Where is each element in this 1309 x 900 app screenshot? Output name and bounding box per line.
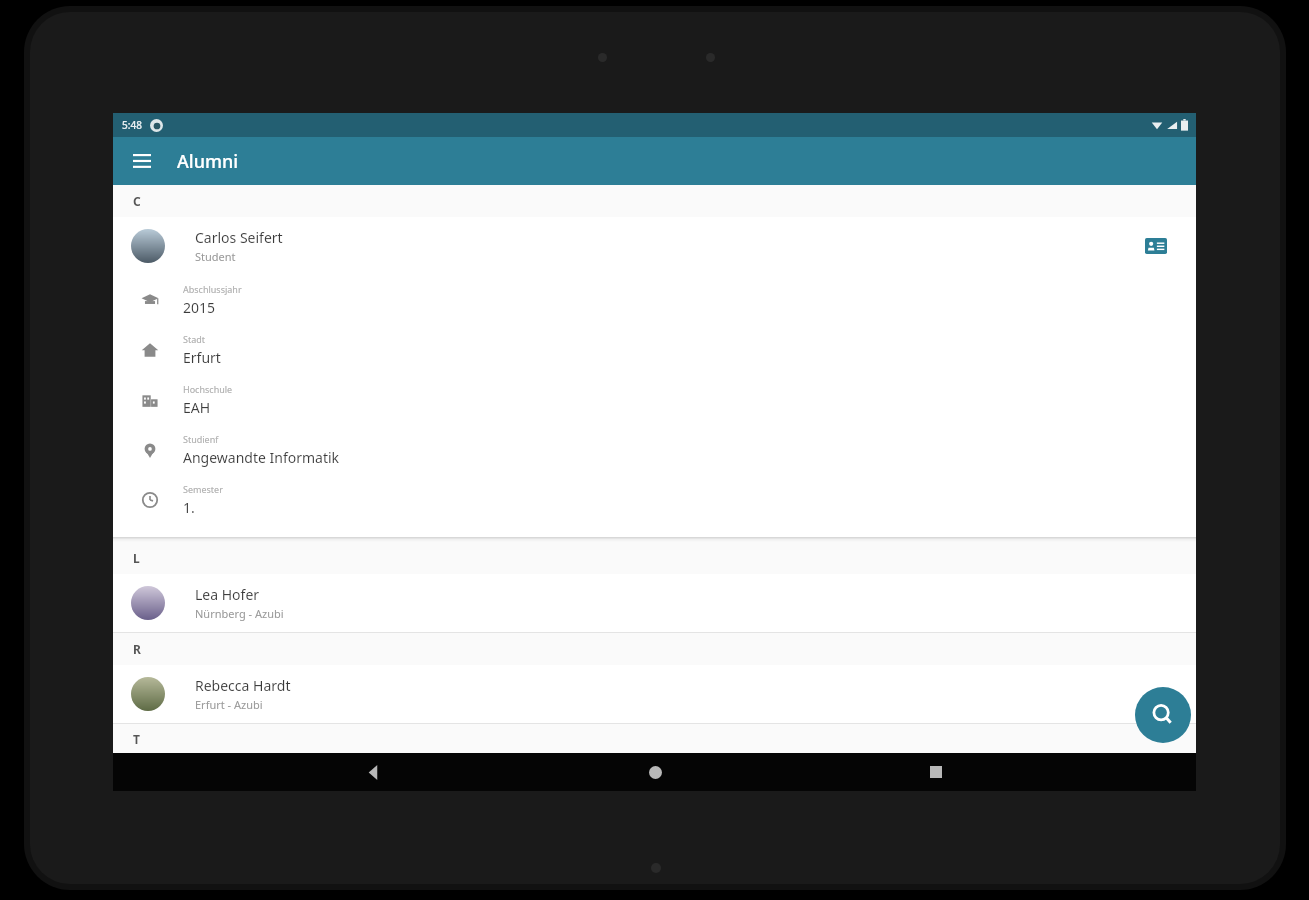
staticText: R — [133, 641, 141, 657]
staticText: Hochschule — [183, 383, 233, 395]
button[interactable]: Stadt — [113, 325, 1196, 375]
button[interactable]: Home — [633, 753, 677, 791]
staticText: Erfurt - Azubi — [195, 697, 263, 712]
staticText: L — [133, 550, 140, 566]
button[interactable]: Open navigation drawer — [123, 142, 161, 180]
staticText: 1. — [183, 498, 195, 517]
staticText: 5:48 — [122, 118, 142, 132]
staticText: Angewandte Informatik — [183, 448, 340, 467]
staticText: EAH — [183, 398, 211, 417]
button[interactable]: Back — [351, 753, 395, 791]
staticText: Stadt — [183, 333, 206, 345]
staticText: Nürnberg - Azubi — [195, 606, 284, 621]
button[interactable]: Semester — [113, 475, 1196, 525]
staticText: Carlos Seifert — [195, 228, 283, 247]
button[interactable]: Recent apps — [914, 753, 958, 791]
staticText: Abschlussjahr — [183, 283, 242, 295]
button[interactable]: Lea Hofer — [113, 574, 1196, 632]
button[interactable]: Contact card — [1136, 226, 1176, 266]
button[interactable]: Abschlussjahr — [113, 275, 1196, 325]
button[interactable]: Studienf — [113, 425, 1196, 475]
staticText: C — [133, 193, 141, 209]
staticText: Alumni — [177, 149, 239, 174]
staticText: Studienf — [183, 433, 219, 445]
button[interactable]: Rebecca Hardt — [113, 665, 1196, 723]
button[interactable]: Carlos Seifert — [113, 217, 1196, 275]
staticText: Semester — [183, 483, 223, 495]
staticText: Rebecca Hardt — [195, 676, 291, 695]
staticText: T — [133, 731, 140, 747]
staticText: Erfurt — [183, 348, 221, 367]
staticText: 2015 — [183, 298, 216, 317]
staticText: Student — [195, 249, 236, 264]
button[interactable]: Hochschule — [113, 375, 1196, 425]
button[interactable]: Search — [1135, 687, 1191, 743]
staticText: Lea Hofer — [195, 585, 260, 604]
